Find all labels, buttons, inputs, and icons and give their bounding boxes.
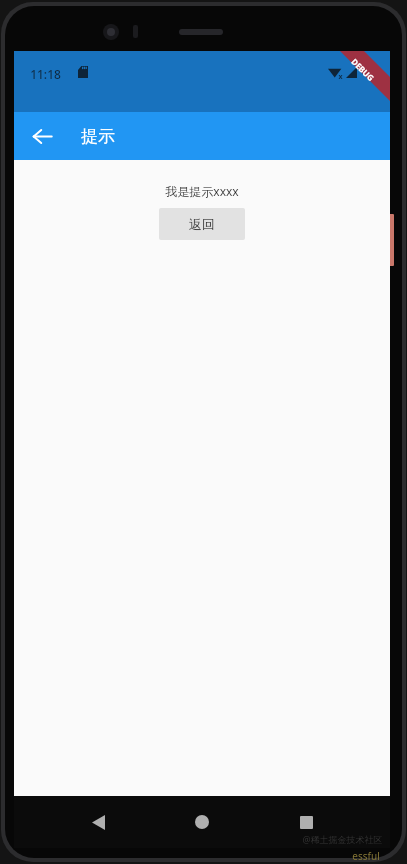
button[interactable]: Back — [18, 112, 66, 160]
staticText: @稀土掘金技术社区 — [302, 833, 383, 845]
button[interactable]: Recent apps — [282, 796, 330, 848]
staticText: DEBUG — [349, 56, 377, 83]
button[interactable]: Back — [74, 796, 122, 848]
staticText: 提示 — [81, 126, 115, 147]
staticText: essful — [352, 849, 380, 863]
staticText: 11:18 — [30, 66, 61, 82]
staticText: 我是提示xxxx — [165, 183, 239, 199]
staticText: 返回 — [189, 216, 215, 232]
staticText: x — [338, 72, 343, 82]
button[interactable]: Home — [178, 796, 226, 848]
button[interactable]: 返回 — [159, 208, 245, 240]
